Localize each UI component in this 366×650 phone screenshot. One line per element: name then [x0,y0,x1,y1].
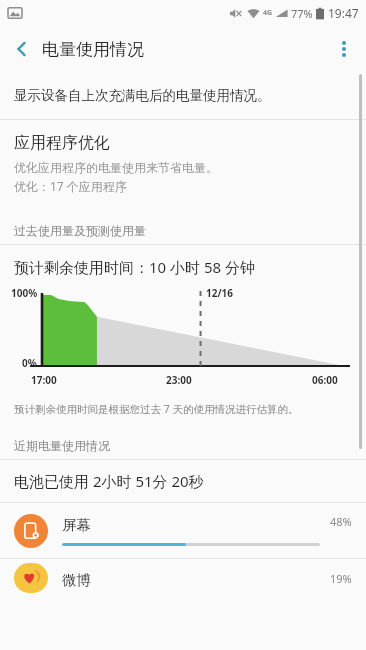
staticText: 应用程序优化 [14,133,110,153]
staticText: 优化应用程序的电量使用来节省电量。 [14,160,218,175]
staticText: 19% [330,571,352,586]
staticText: 过去使用量及预测使用量 [14,223,146,238]
staticText: 48% [330,514,352,529]
staticText: 19:47 [328,5,359,21]
staticText: 17:00 [31,373,57,387]
staticText: 12/16 [206,286,234,300]
staticText: 微博 [62,571,91,589]
staticText: 显示设备自上次充满电后的电量使用情况。 [14,87,271,104]
button[interactable]: 微博 [0,559,366,589]
staticText: 23:00 [166,373,192,387]
button[interactable]: More options [322,27,366,71]
staticText: 近期电量使用情况 [14,438,110,453]
staticText: 0% [22,356,37,370]
button[interactable]: 应用程序优化 [0,120,366,207]
staticText: 电池已使用 2小时 51分 20秒 [14,471,204,491]
staticText: 预计剩余使用时间：10 小时 58 分钟 [14,257,256,277]
staticText: 4G [263,8,273,18]
staticText: 77% [291,6,313,21]
staticText: 电量使用情况 [42,39,144,60]
button[interactable]: Back [0,27,44,71]
staticText: 屏幕 [62,516,91,534]
staticText: 06:00 [312,373,338,387]
staticText: 100% [11,286,38,300]
button[interactable]: 屏幕 [0,503,366,558]
staticText: 优化：17 个应用程序 [14,178,127,194]
staticText: 预计剩余使用时间是根据您过去 7 天的使用情况进行估算的。 [14,402,299,416]
